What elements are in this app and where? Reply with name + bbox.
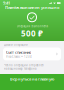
staticText: Чек по операции отправлен [4,63,44,67]
staticText: Вернуться на главную [10,76,54,82]
staticText: на ваш номер телефона [4,67,36,70]
staticText: Visa Classic •• 1234 [6,55,32,58]
staticText: Детали операции [4,43,28,46]
staticText: 500 ₽ [21,28,43,39]
staticText: 9:41 [3,0,10,6]
staticText: Счёт списания [6,49,31,55]
button[interactable]: Счёт списания [0,46,64,60]
button[interactable]: Вернуться на главную [0,74,64,90]
staticText: Операция выполнена [16,25,47,28]
staticText: Платёж выполнен успешно [5,5,59,10]
